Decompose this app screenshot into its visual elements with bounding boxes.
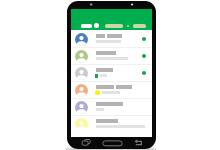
button[interactable]: Profile	[94, 23, 99, 28]
button[interactable]	[71, 82, 152, 99]
button[interactable]: Menu	[81, 24, 92, 28]
button[interactable]: Back	[132, 136, 145, 148]
button[interactable]	[71, 99, 152, 116]
button[interactable]	[71, 31, 152, 48]
button[interactable]: Recent apps	[80, 136, 93, 148]
button[interactable]	[71, 116, 152, 133]
button[interactable]	[71, 65, 152, 82]
button[interactable]	[71, 48, 152, 65]
button[interactable]: Home	[101, 136, 124, 148]
